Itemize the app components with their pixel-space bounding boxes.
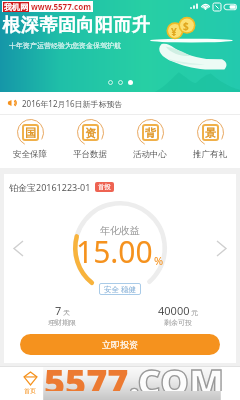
button[interactable]: 背: [120, 115, 180, 168]
staticText: 安全保障: [13, 149, 47, 160]
staticText: 背: [145, 126, 156, 140]
button[interactable]: 公告: [0, 92, 240, 114]
staticText: 铂金宝20161223-01: [9, 181, 91, 193]
staticText: 产品: [84, 387, 96, 395]
staticText: 根深蒂固向阳而升: [2, 14, 150, 37]
button[interactable]: 立即投资: [20, 334, 220, 355]
staticText: 5577: [44, 357, 129, 391]
button[interactable]: 景: [180, 115, 240, 168]
staticText: 年化收益: [100, 224, 140, 237]
button[interactable]: 下一个: [217, 241, 226, 256]
staticText: 首页: [24, 387, 36, 395]
staticText: 我机网: [4, 2, 28, 12]
button[interactable]: 我的: [180, 367, 240, 400]
staticText: 平台数据: [73, 149, 107, 160]
staticText: www.5577.com: [31, 1, 91, 12]
staticText: 十年资产运营经验为您资金保驾护航: [9, 41, 121, 50]
button[interactable]: 首页: [0, 367, 60, 400]
button[interactable]: 上一个: [14, 241, 23, 256]
button[interactable]: 国: [0, 115, 60, 168]
staticText: 立即投资: [102, 339, 138, 350]
staticText: 我的: [204, 387, 216, 395]
staticText: %: [154, 253, 164, 268]
button[interactable]: 产品: [60, 367, 120, 400]
staticText: 国: [25, 126, 36, 140]
staticText: $: [183, 19, 189, 33]
staticText: 活动中心: [133, 149, 167, 160]
staticText: 元: [191, 308, 198, 317]
staticText: 剩余可投: [164, 318, 192, 327]
staticText: ¥: [171, 25, 177, 39]
staticText: 理财期限: [48, 318, 76, 327]
staticText: 景: [205, 126, 216, 140]
staticText: 安全 稳健: [104, 284, 136, 294]
staticText: 发现: [144, 387, 156, 395]
other: 公告: [6, 97, 18, 109]
button[interactable]: 发现: [120, 367, 180, 400]
staticText: 7: [55, 303, 62, 318]
staticText: 天: [63, 308, 70, 317]
staticText: 首投: [98, 183, 111, 191]
staticText: .COM: [129, 357, 224, 391]
staticText: .COM: [129, 357, 224, 391]
button[interactable]: 资: [60, 115, 120, 168]
staticText: 2016年12月16日新手标预告: [22, 98, 123, 109]
staticText: 推广有礼: [193, 149, 227, 160]
staticText: 资: [85, 126, 96, 140]
staticText: 40000: [158, 303, 190, 318]
staticText: 15.00: [76, 231, 153, 272]
